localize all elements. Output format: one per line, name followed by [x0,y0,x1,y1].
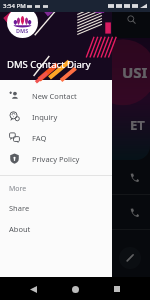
button[interactable]: Home [66,280,84,298]
staticText: 3:54 PM [3,2,26,10]
other: Privacy Policy [9,153,20,164]
button[interactable]: Share [0,197,112,218]
other: FAQ [9,132,20,143]
button[interactable]: Add contact [119,247,141,269]
button[interactable]: Contact name… [0,160,150,194]
button[interactable]: Search [123,11,139,27]
staticText: New Contact [32,91,77,101]
staticText: Share [9,203,30,213]
button[interactable]: Recents [108,280,126,298]
staticText: ET [130,116,145,134]
staticText: Privacy Policy [32,154,80,164]
button[interactable]: About [0,218,112,239]
button[interactable]: Call [0,195,150,229]
staticText: Inquiry [32,112,58,122]
button[interactable]: Call [126,169,142,185]
staticText: About [9,224,31,234]
other: New Contact [9,90,20,101]
staticText [8,207,126,217]
button[interactable]: New Contact [0,85,112,106]
button[interactable]: Privacy Policy [0,148,112,169]
staticText: FAQ [32,133,47,143]
button[interactable]: Back [24,280,42,298]
staticText: DMS Contact Diary [7,58,91,71]
button[interactable]: Inquiry [0,106,112,127]
staticText: DMS [16,27,29,34]
button[interactable]: FAQ [0,127,112,148]
staticText: USI [122,62,148,82]
other: Inquiry [9,111,20,122]
staticText: Contact name… [8,172,126,182]
button[interactable]: Call [126,204,142,220]
staticText: More [9,184,27,194]
